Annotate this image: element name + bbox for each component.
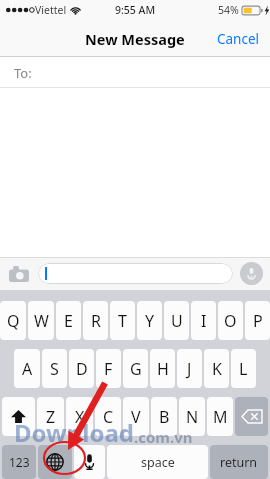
staticText: P	[253, 310, 263, 332]
button[interactable]: O	[218, 301, 243, 340]
staticText: Z	[46, 406, 56, 428]
button[interactable]: E	[56, 301, 81, 340]
button[interactable]: M	[207, 397, 233, 436]
button[interactable]: Q	[0, 301, 26, 340]
button[interactable]: K	[204, 349, 229, 388]
staticText: G	[130, 358, 142, 380]
button[interactable]: A	[14, 349, 40, 388]
staticText: M	[213, 406, 228, 428]
button[interactable]: To:	[0, 57, 270, 88]
staticText: R	[91, 310, 101, 332]
button[interactable]: J	[177, 349, 202, 388]
button[interactable]: Shift	[2, 397, 35, 436]
button[interactable]: V	[123, 397, 149, 436]
staticText: L	[239, 358, 248, 380]
staticText: Q	[7, 310, 20, 332]
button[interactable]: W	[28, 301, 54, 340]
staticText: X	[75, 406, 85, 428]
button[interactable]: S	[42, 349, 67, 388]
button[interactable]: 123	[2, 445, 36, 479]
button[interactable]: U	[164, 301, 189, 340]
staticText: 123	[9, 454, 30, 470]
staticText: C	[103, 406, 114, 428]
staticText: D	[76, 358, 88, 380]
staticText: space	[141, 454, 175, 471]
staticText: W	[34, 310, 49, 332]
button[interactable]: Cancel	[207, 22, 270, 56]
staticText: N	[186, 406, 199, 428]
staticText: J	[187, 358, 192, 380]
button[interactable]: Take photo	[7, 262, 31, 286]
button[interactable]: G	[123, 349, 148, 388]
button[interactable]: space	[107, 445, 208, 479]
staticText: F	[104, 358, 113, 380]
staticText: T	[118, 310, 127, 332]
button[interactable]: T	[110, 301, 135, 340]
staticText: Viettel	[35, 3, 67, 17]
button[interactable]	[38, 263, 233, 284]
staticText: H	[157, 358, 169, 380]
button[interactable]: I	[191, 301, 216, 340]
staticText: 54%	[218, 3, 239, 17]
button[interactable]: D	[69, 349, 94, 388]
button[interactable]: return	[210, 445, 268, 479]
staticText: .com.vn	[134, 427, 193, 447]
staticText: O	[224, 310, 237, 332]
button[interactable]: F	[96, 349, 121, 388]
button[interactable]: R	[83, 301, 108, 340]
staticText: B	[159, 406, 170, 428]
button[interactable]: Z	[37, 397, 64, 436]
staticText: Y	[145, 310, 155, 332]
staticText: Download	[14, 416, 134, 449]
staticText: E	[64, 310, 73, 332]
staticText: New Message	[85, 29, 185, 49]
button[interactable]: X	[66, 397, 93, 436]
button[interactable]: Delete	[235, 397, 268, 436]
staticText: return	[220, 454, 258, 471]
button[interactable]: Dictate	[74, 445, 105, 479]
button[interactable]: C	[95, 397, 121, 436]
button[interactable]: H	[150, 349, 175, 388]
button[interactable]: Record audio	[240, 262, 263, 285]
staticText: 9:55 AM	[115, 3, 156, 17]
staticText: To:	[14, 64, 32, 82]
button[interactable]: B	[151, 397, 177, 436]
staticText: K	[212, 358, 222, 380]
staticText: V	[131, 406, 141, 428]
button[interactable]: Next keyboard	[38, 445, 72, 479]
staticText: A	[22, 358, 33, 380]
button[interactable]: Y	[137, 301, 162, 340]
button[interactable]: L	[231, 349, 256, 388]
staticText: U	[171, 310, 183, 332]
button[interactable]: P	[245, 301, 270, 340]
button[interactable]: N	[179, 397, 205, 436]
staticText: S	[50, 358, 59, 380]
staticText: I	[201, 310, 207, 332]
staticText: Cancel	[217, 30, 260, 48]
